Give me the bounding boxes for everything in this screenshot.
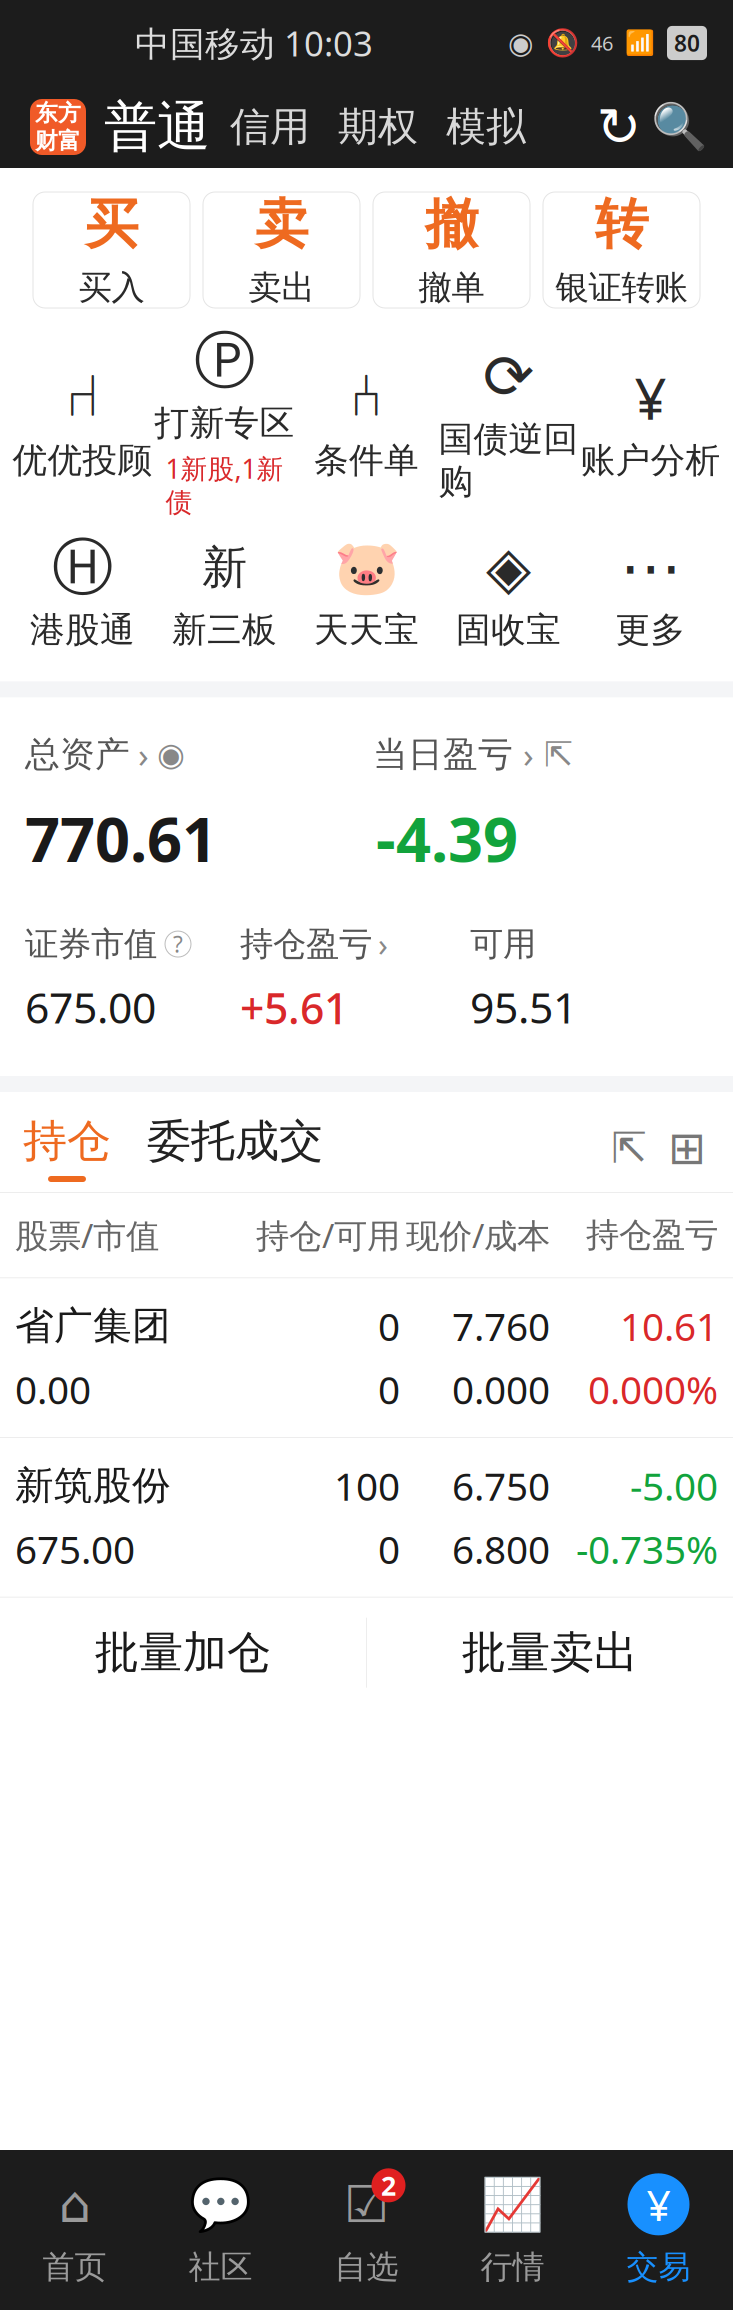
button[interactable]: 当日盈亏 xyxy=(373,731,573,777)
button[interactable]: ⟳ xyxy=(437,346,579,503)
button[interactable]: 持仓盈亏 xyxy=(240,923,388,965)
button[interactable]: 模拟 xyxy=(432,102,540,151)
button[interactable]: 切换视图 xyxy=(658,1119,716,1177)
button[interactable]: Ⓗ xyxy=(11,537,153,651)
button[interactable]: 省广集团 xyxy=(0,1278,733,1437)
staticText: 首页 xyxy=(42,2247,106,2287)
button[interactable]: 撤 xyxy=(373,192,530,308)
button[interactable]: ¥ xyxy=(585,2160,731,2300)
button[interactable]: ⌂ xyxy=(1,2160,147,2300)
staticText: 批量加仓 xyxy=(95,1626,271,1680)
staticText: 省广集团 xyxy=(15,1302,171,1350)
button[interactable]: Ⓟ xyxy=(153,330,295,519)
button[interactable]: 持仓 xyxy=(0,1114,129,1182)
staticText: ◉ xyxy=(157,736,185,772)
button[interactable]: ☑ xyxy=(293,2160,439,2300)
staticText: ↻ xyxy=(596,97,641,157)
staticText: 675.00 xyxy=(15,1523,135,1575)
staticText: ¥ xyxy=(646,2176,670,2233)
staticText: ⊞ xyxy=(668,1122,706,1174)
staticText: 信用 xyxy=(230,102,310,151)
button[interactable]: 买 xyxy=(33,192,190,308)
staticText: 🔍 xyxy=(651,101,707,153)
staticText: ⑁ xyxy=(65,369,100,427)
staticText: ⇱ xyxy=(544,735,573,774)
button[interactable]: 刷新 xyxy=(589,97,649,157)
staticText: 批量卖出 xyxy=(462,1626,638,1680)
staticText: Ⓟ xyxy=(194,323,255,399)
staticText: 中国移动 10:03 xyxy=(135,20,373,66)
button[interactable]: 信用 xyxy=(216,102,324,151)
button[interactable]: 展开 xyxy=(600,1119,658,1177)
button[interactable]: ◈ xyxy=(437,537,579,651)
staticText: 持仓盈亏 xyxy=(586,1215,718,1256)
staticText: 6.800 xyxy=(452,1523,550,1575)
button[interactable]: 批量卖出 xyxy=(367,1598,733,1708)
staticText: 770.61 xyxy=(25,797,217,879)
staticText: ⑃ xyxy=(349,369,384,427)
staticText: 卖出 xyxy=(248,267,314,308)
button[interactable]: 转 xyxy=(543,192,700,308)
staticText: 7.760 xyxy=(452,1300,550,1352)
staticText: 条件单 xyxy=(314,439,419,482)
staticText: 现价/成本 xyxy=(406,1213,550,1257)
staticText: › xyxy=(378,923,388,965)
staticText: 💬 xyxy=(189,2175,252,2233)
staticText: 新筑股份 xyxy=(15,1462,171,1509)
staticText: 📈 xyxy=(481,2175,544,2233)
staticText: 0 xyxy=(378,1523,400,1575)
staticText: 0.000 xyxy=(452,1364,550,1415)
button[interactable]: 普通 xyxy=(86,94,216,160)
staticText: 🐷 xyxy=(333,537,399,598)
staticText: 撤单 xyxy=(418,267,484,308)
button[interactable]: 卖 xyxy=(203,192,360,308)
staticText: ◈ xyxy=(486,534,531,601)
staticText: ¥ xyxy=(634,361,666,435)
staticText: 财富 xyxy=(35,127,81,155)
staticText: › xyxy=(523,731,534,777)
staticText: 0.000% xyxy=(588,1364,718,1415)
staticText: ⋯ xyxy=(620,533,681,602)
staticText: 期权 xyxy=(338,102,418,151)
button[interactable]: 总资产 xyxy=(25,731,185,777)
button[interactable]: 东方财富 xyxy=(30,99,86,155)
staticText: 总资产 xyxy=(25,733,130,776)
staticText: ⇱ xyxy=(611,1124,647,1172)
button[interactable]: 搜索 xyxy=(649,97,709,157)
staticText: ⟳ xyxy=(483,342,534,412)
button[interactable]: 批量加仓 xyxy=(0,1598,366,1708)
staticText: +5.61 xyxy=(240,979,348,1036)
staticText: 模拟 xyxy=(446,102,526,151)
staticText: ◉ xyxy=(508,26,534,60)
button[interactable]: ⋯ xyxy=(579,537,721,651)
button[interactable]: 期权 xyxy=(324,102,432,151)
staticText: 银证转账 xyxy=(555,267,687,308)
staticText: 新三板 xyxy=(172,609,277,651)
staticText: 账户分析 xyxy=(580,439,720,482)
button[interactable]: 新筑股份 xyxy=(0,1438,733,1597)
staticText: 卖 xyxy=(255,192,308,257)
button[interactable]: 🐷 xyxy=(295,537,437,651)
button[interactable]: 📈 xyxy=(439,2160,585,2300)
button[interactable]: ⑁ xyxy=(11,367,153,482)
button[interactable]: 新 xyxy=(153,537,295,651)
staticText: 🔕 xyxy=(546,28,579,58)
button[interactable]: 💬 xyxy=(147,2160,293,2300)
staticText: 0.00 xyxy=(15,1364,91,1415)
button[interactable]: ¥ xyxy=(579,367,721,482)
staticText: 更多 xyxy=(615,609,685,651)
staticText: › xyxy=(138,731,149,777)
staticText: 打新专区 xyxy=(154,402,294,445)
staticText: 当日盈亏 xyxy=(373,733,513,776)
staticText: 0 xyxy=(378,1300,400,1352)
button[interactable]: 委托成交 xyxy=(129,1114,341,1182)
staticText: 转 xyxy=(595,192,648,257)
staticText: 持仓 xyxy=(23,1114,111,1168)
staticText: -4.39 xyxy=(376,797,518,879)
staticText: 天天宝 xyxy=(314,609,419,651)
staticText: 新 xyxy=(202,540,247,596)
staticText: 10.61 xyxy=(620,1300,718,1352)
button[interactable]: ⑃ xyxy=(295,367,437,482)
staticText: 交易 xyxy=(626,2247,690,2287)
staticText: 股票/市值 xyxy=(15,1213,159,1257)
